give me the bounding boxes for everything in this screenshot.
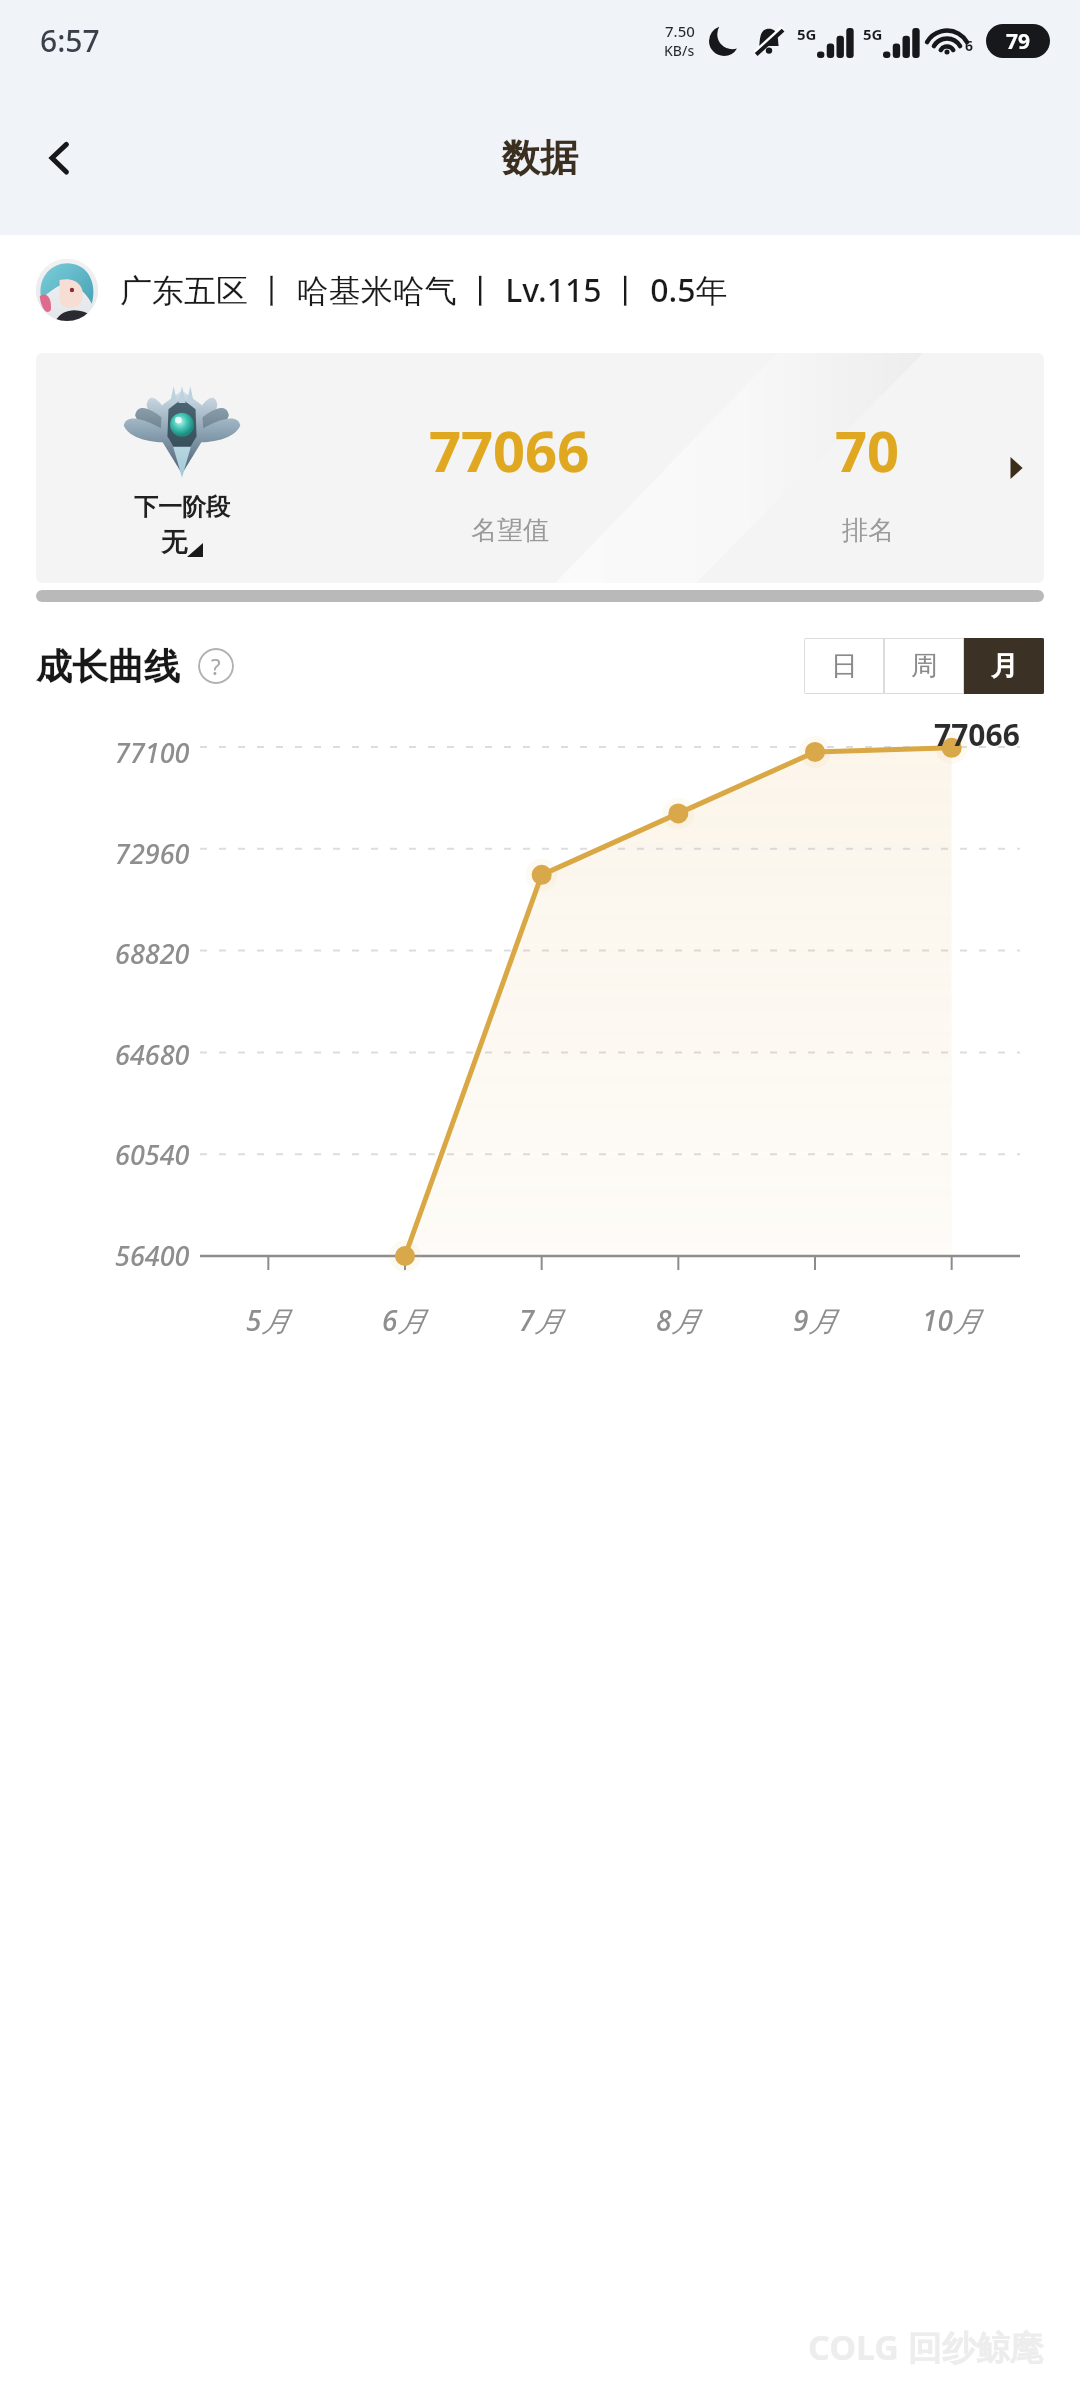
staticText: 72960 bbox=[115, 835, 190, 872]
staticText: COLG 回纱鲸麾 bbox=[808, 2324, 1044, 2370]
staticText: 5G bbox=[863, 24, 883, 44]
other: More bbox=[996, 448, 1036, 488]
staticText: 68820 bbox=[115, 935, 190, 972]
button[interactable]: 日 bbox=[804, 638, 884, 694]
staticText: 5月 bbox=[246, 1301, 290, 1339]
staticText: 无 bbox=[161, 526, 187, 559]
button[interactable]: 广东五区 丨 哈基米哈气 丨 Lv.115 丨 0.5年 bbox=[36, 235, 1080, 345]
staticText: 下一阶段 bbox=[134, 492, 230, 522]
staticText: 70 bbox=[835, 412, 900, 488]
staticText: 7月 bbox=[519, 1301, 563, 1339]
staticText: 日 bbox=[831, 649, 858, 683]
staticText: 79 bbox=[1006, 27, 1031, 56]
button[interactable]: 周 bbox=[884, 638, 964, 694]
staticText: 77066 bbox=[934, 714, 1020, 755]
staticText: 周 bbox=[911, 649, 938, 683]
staticText: 8月 bbox=[656, 1301, 700, 1339]
staticText: 6 bbox=[965, 36, 974, 55]
staticText: 6:57 bbox=[40, 20, 100, 61]
button[interactable]: Back bbox=[20, 118, 100, 198]
staticText: 9月 bbox=[793, 1301, 837, 1339]
staticText: 56400 bbox=[115, 1237, 190, 1274]
staticText: 77100 bbox=[115, 734, 190, 771]
staticText: ? bbox=[211, 651, 221, 681]
staticText: 月 bbox=[991, 649, 1018, 683]
button[interactable]: 月 bbox=[964, 638, 1044, 694]
staticText: 77066 bbox=[429, 412, 590, 488]
staticText: 6月 bbox=[382, 1301, 426, 1339]
staticText: 数据 bbox=[502, 134, 578, 182]
staticText: 排名 bbox=[842, 514, 894, 547]
staticText: 60540 bbox=[115, 1136, 190, 1173]
staticText: 5G bbox=[797, 24, 817, 44]
staticText: 名望值 bbox=[471, 514, 549, 547]
button[interactable]: 下一阶段 bbox=[36, 353, 1044, 583]
staticText: 成长曲线 bbox=[36, 644, 180, 689]
staticText: 10月 bbox=[922, 1301, 981, 1339]
staticText: 7.50 bbox=[665, 21, 695, 41]
staticText: KB/s bbox=[664, 41, 695, 60]
staticText: 广东五区 丨 哈基米哈气 丨 Lv.115 丨 0.5年 bbox=[120, 268, 728, 312]
staticText: 64680 bbox=[115, 1036, 190, 1073]
button[interactable]: Help bbox=[194, 644, 238, 688]
